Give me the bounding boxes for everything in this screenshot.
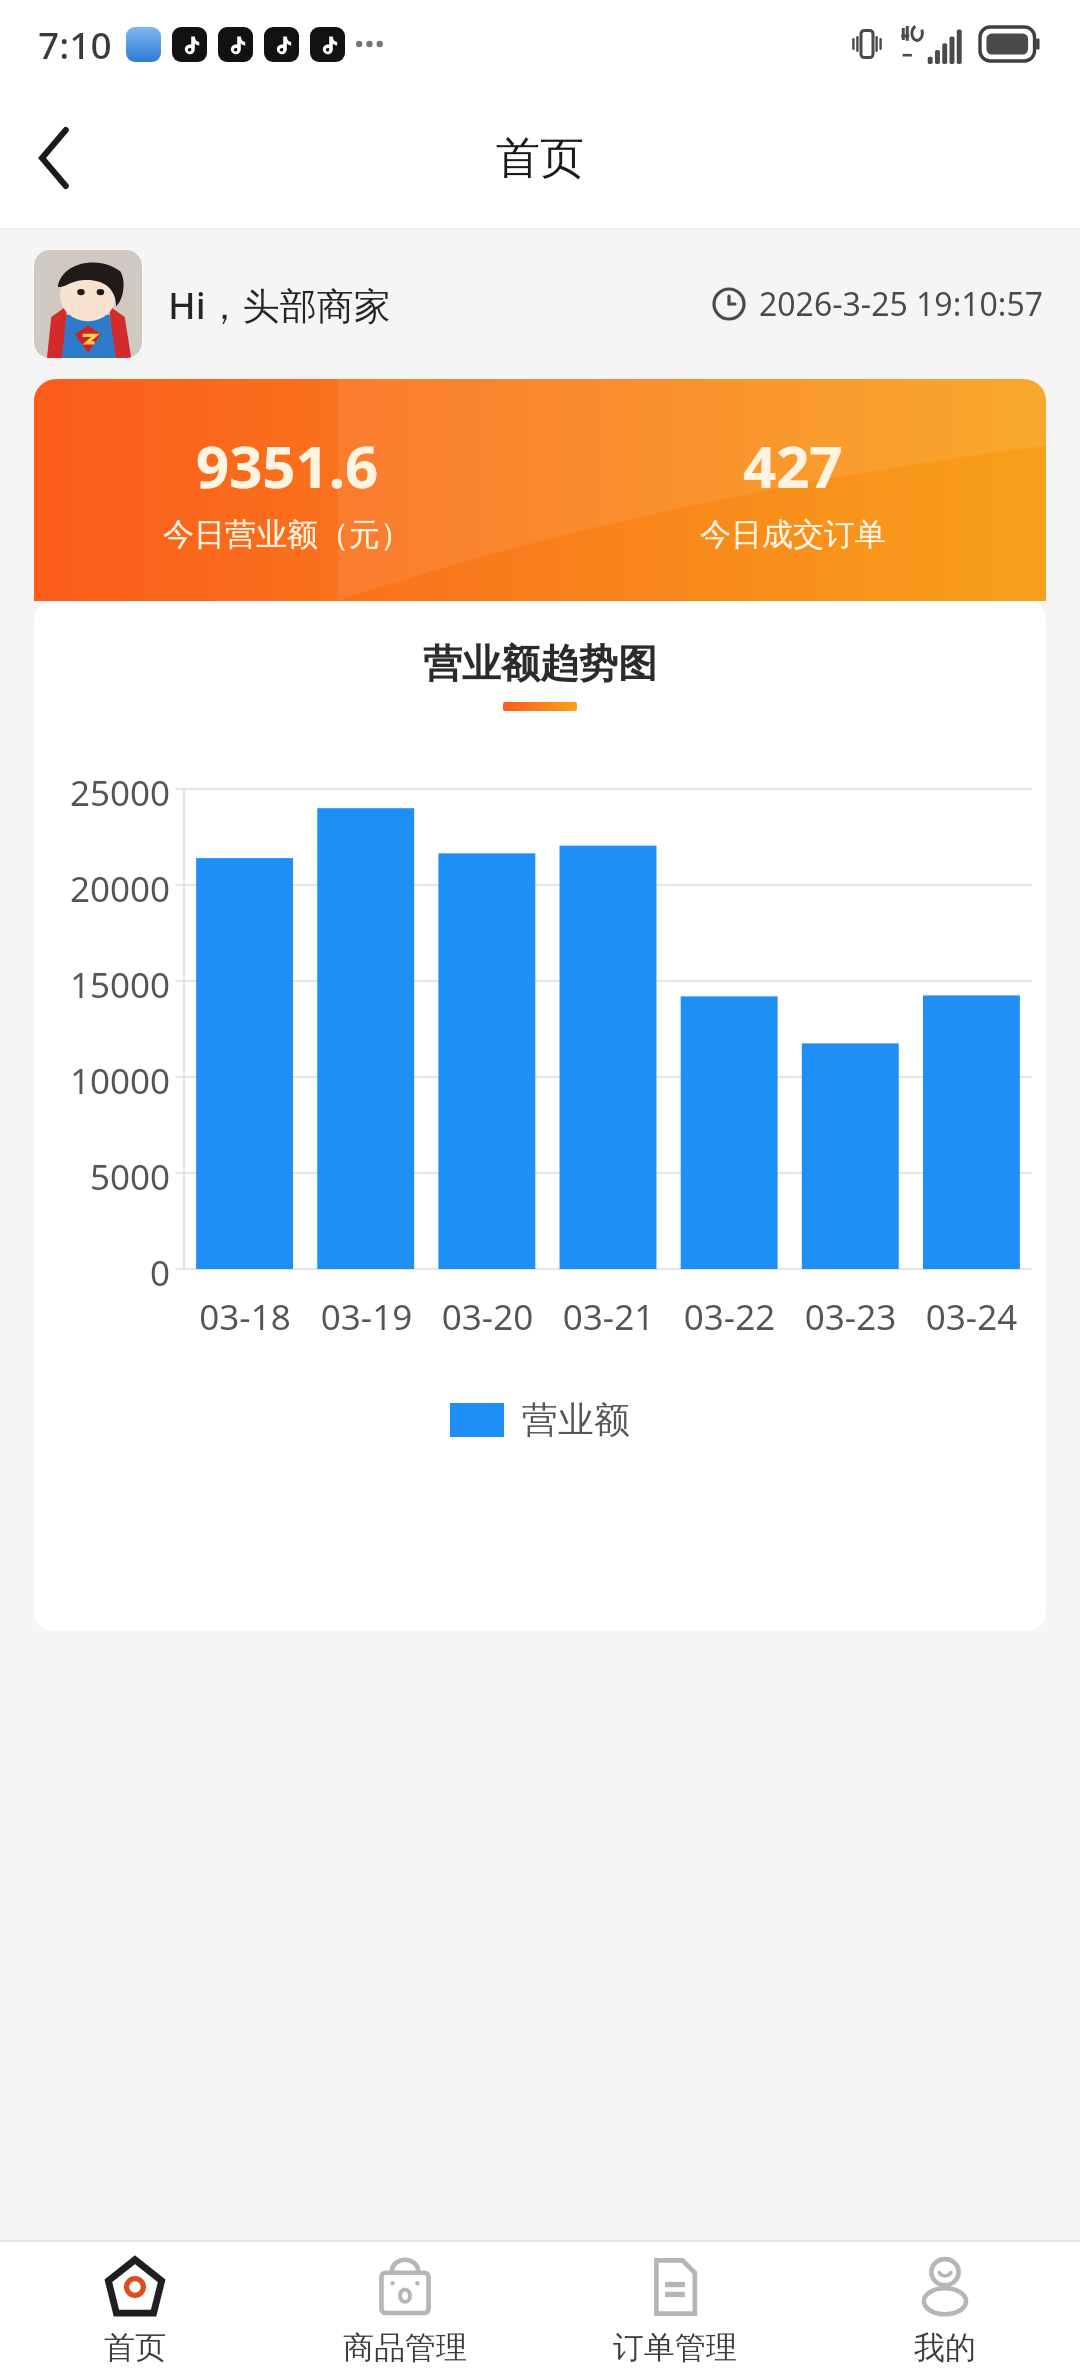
staticText: 商品管理 <box>343 2328 467 2367</box>
staticText: 03-21 <box>548 1293 669 1341</box>
staticText: 今日营业额（元） <box>163 515 411 554</box>
staticText: 427 <box>743 426 843 505</box>
staticText: 5000 <box>89 1153 170 1201</box>
staticText: 首页 <box>104 2328 166 2367</box>
staticText: 我的 <box>914 2328 976 2367</box>
staticText: 0 <box>149 1249 170 1297</box>
button[interactable]: 订单管理 <box>540 2242 810 2375</box>
button[interactable]: Back <box>0 103 110 213</box>
staticText: Hi，头部商家 <box>168 279 391 330</box>
staticText: 03-18 <box>184 1293 306 1341</box>
staticText: 03-22 <box>669 1293 790 1341</box>
staticText: 今日成交订单 <box>700 515 886 554</box>
button[interactable]: 我的 <box>810 2242 1080 2375</box>
staticText: 20000 <box>69 865 170 913</box>
staticText: 9351.6 <box>196 426 379 505</box>
staticText: 03-19 <box>306 1293 427 1341</box>
staticText: 10000 <box>69 1057 170 1105</box>
button[interactable]: Profile avatar <box>34 250 142 358</box>
button[interactable]: 商品管理 <box>270 2242 540 2375</box>
staticText: 03-23 <box>790 1293 911 1341</box>
staticText: 03-24 <box>911 1293 1032 1341</box>
staticText: 25000 <box>69 769 170 817</box>
staticText: 2026-3-25 19:10:57 <box>759 282 1044 326</box>
staticText: 03-20 <box>427 1293 548 1341</box>
staticText: 营业额 <box>522 1397 630 1442</box>
staticText: 15000 <box>69 961 170 1009</box>
button[interactable]: 9351.6 <box>34 379 1046 601</box>
staticText: 营业额趋势图 <box>34 639 1046 688</box>
staticText: 首页 <box>496 131 584 186</box>
button[interactable]: 首页 <box>0 2242 270 2375</box>
staticText: 7:10 <box>38 19 112 69</box>
staticText: 订单管理 <box>613 2328 737 2367</box>
